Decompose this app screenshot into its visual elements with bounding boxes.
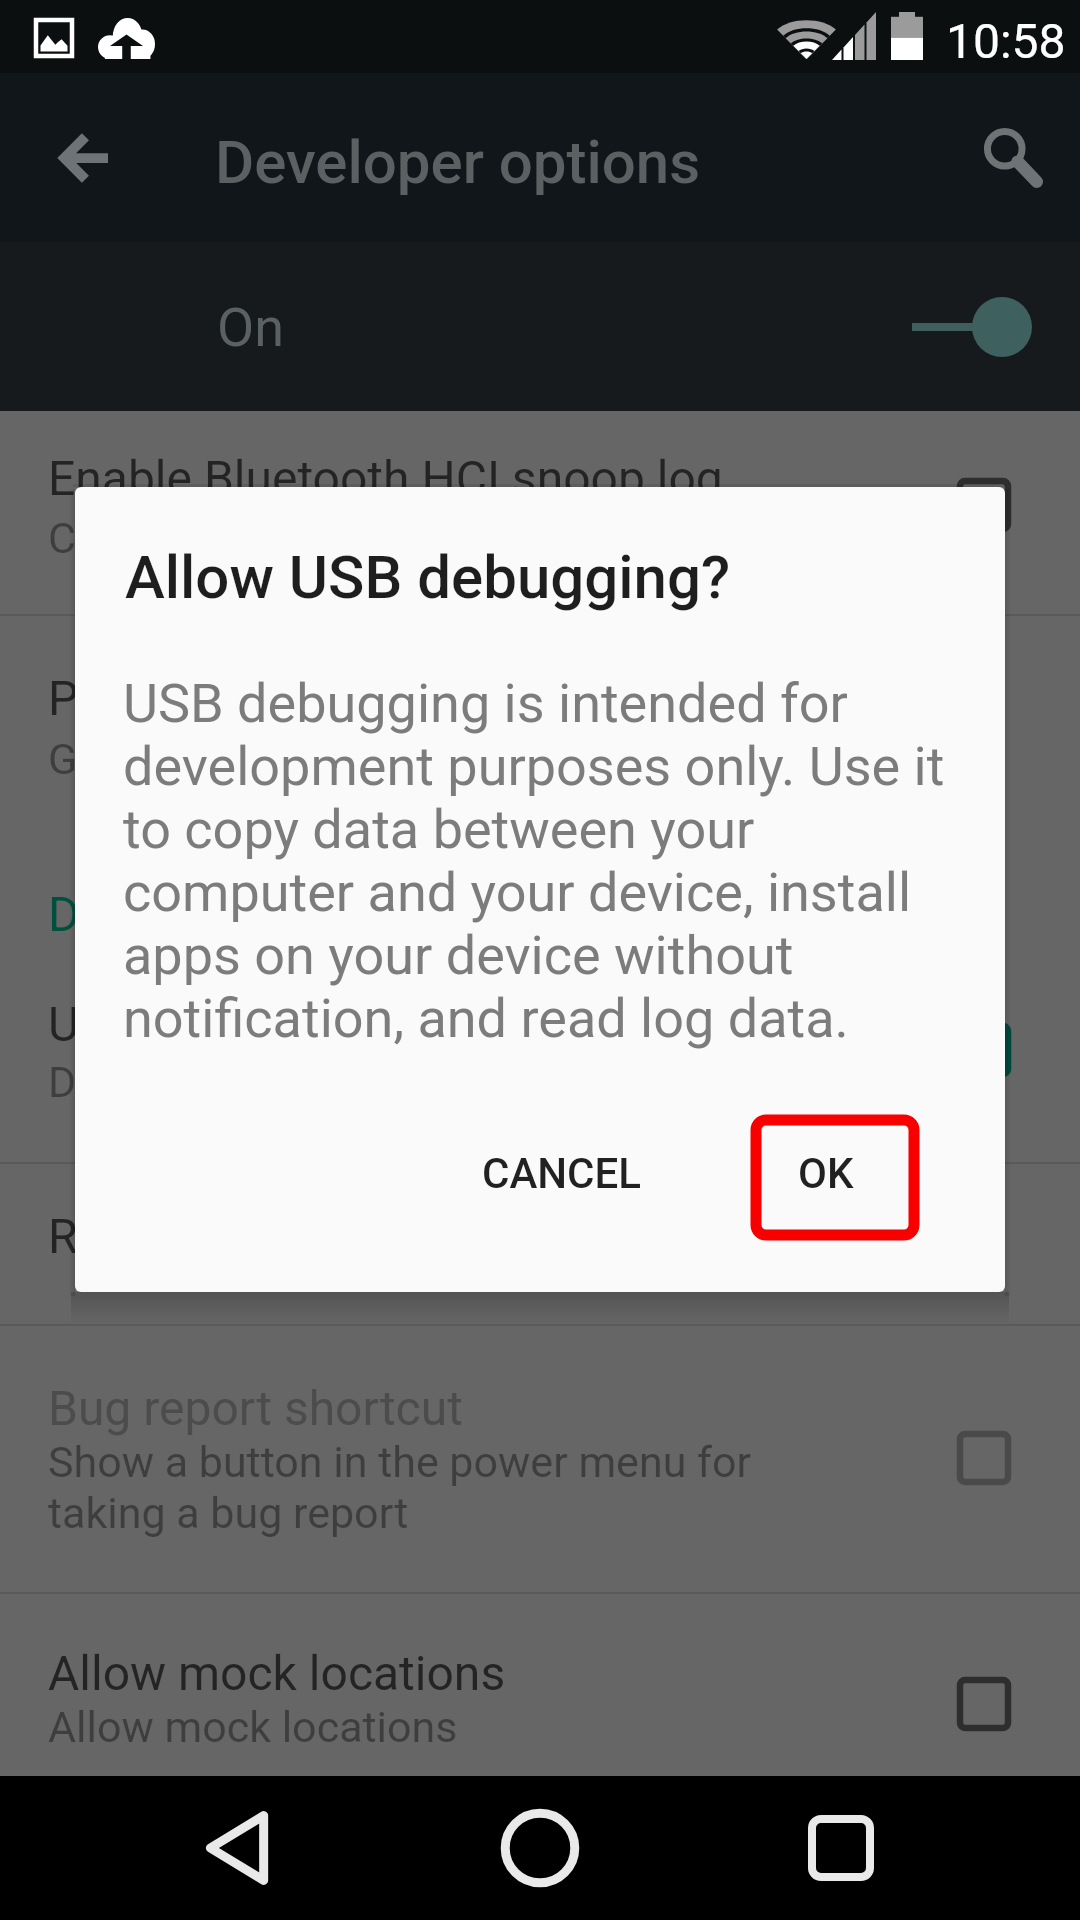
- staticText: Developer options: [215, 127, 701, 197]
- staticText: On: [217, 296, 284, 359]
- staticText: taking a bug report: [48, 1488, 409, 1538]
- staticText: Process Stats: [48, 670, 345, 726]
- button[interactable]: Navigate up: [40, 114, 128, 202]
- button[interactable]: Toggle setting: [924, 1654, 1044, 1754]
- button[interactable]: [0, 616, 1080, 816]
- button[interactable]: Recent apps: [781, 1788, 901, 1908]
- button[interactable]: [0, 411, 1080, 616]
- button[interactable]: [0, 940, 1080, 1164]
- button[interactable]: CANCEL: [416, 1111, 706, 1236]
- button[interactable]: Search: [966, 112, 1058, 204]
- button[interactable]: Home: [480, 1788, 600, 1908]
- staticText: Allow mock locations: [48, 1645, 506, 1701]
- button[interactable]: Toggle setting: [924, 1408, 1044, 1508]
- button[interactable]: Toggle setting: [924, 1000, 1044, 1100]
- staticText: Allow mock locations: [48, 1702, 458, 1752]
- button[interactable]: [0, 1326, 1080, 1594]
- button[interactable]: Back: [177, 1788, 297, 1908]
- staticText: OK: [798, 1149, 854, 1198]
- staticText: Debugging: [48, 886, 278, 942]
- button[interactable]: [0, 1594, 1080, 1776]
- staticText: 10:58: [946, 13, 1066, 69]
- button[interactable]: OK: [751, 1115, 919, 1240]
- button[interactable]: Toggle setting: [924, 455, 1044, 555]
- staticText: CANCEL: [482, 1149, 641, 1198]
- staticText: Capture all bluetooth HCI packets in a f…: [48, 513, 835, 563]
- button[interactable]: [0, 1164, 1080, 1326]
- staticText: Show a button in the power menu for: [48, 1437, 752, 1487]
- staticText: Debug mode when USB is connected: [48, 1057, 750, 1107]
- staticText: Allow USB debugging?: [125, 542, 731, 612]
- staticText: USB debugging: [48, 996, 375, 1052]
- staticText: Enable Bluetooth HCI snoop log: [48, 450, 723, 506]
- button[interactable]: On: [0, 242, 1080, 411]
- staticText: USB debugging is intended for developmen…: [123, 672, 983, 1050]
- staticText: Revoke USB debugging authorizations: [48, 1208, 859, 1264]
- staticText: Geeky stats about running processes: [48, 734, 756, 784]
- staticText: Bug report shortcut: [48, 1380, 463, 1436]
